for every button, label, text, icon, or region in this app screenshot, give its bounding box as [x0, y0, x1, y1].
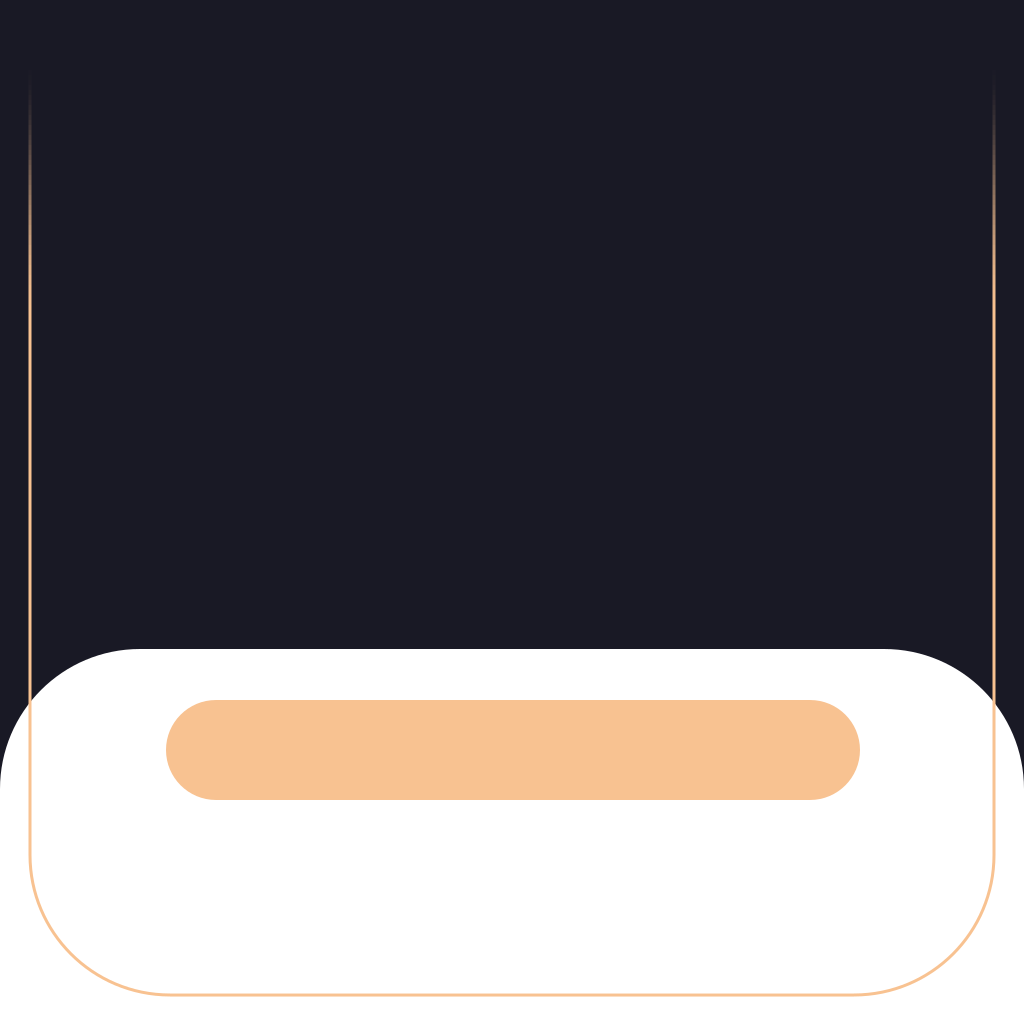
- button[interactable]: Continue: [166, 700, 860, 800]
